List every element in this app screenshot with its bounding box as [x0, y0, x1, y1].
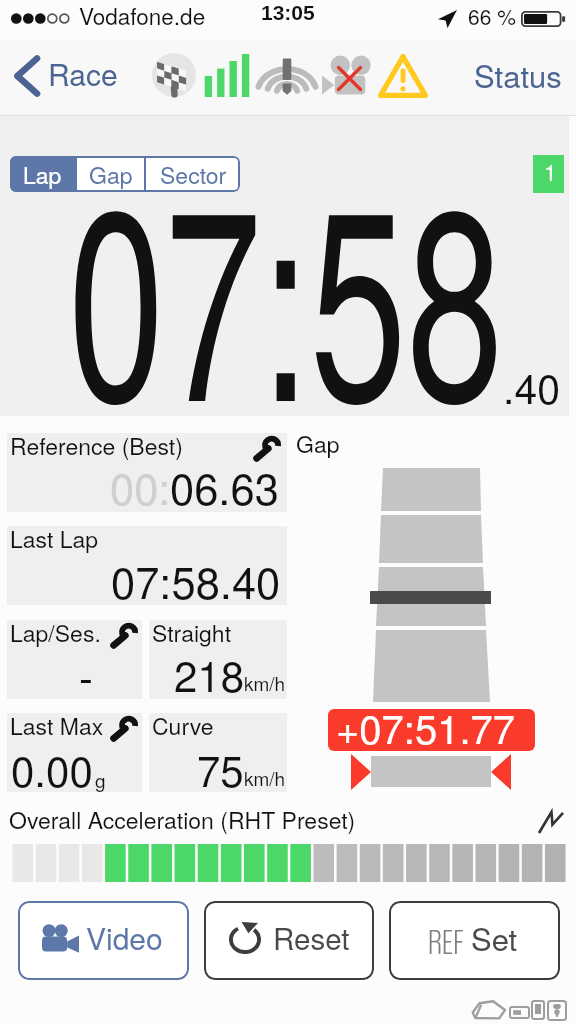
- staticText: Race: [48, 52, 118, 95]
- other: Signal strength: [204, 54, 251, 98]
- staticText: Gap: [296, 427, 340, 460]
- other: Lock: [548, 1001, 566, 1020]
- staticText: 00:: [110, 455, 171, 517]
- staticText: km/h: [244, 669, 286, 696]
- button[interactable]: [149, 620, 287, 699]
- staticText: 06.63: [170, 455, 279, 517]
- staticText: 07:58: [68, 94, 504, 477]
- staticText: Vodafone.de: [79, 0, 206, 31]
- staticText: Sector: [160, 158, 227, 191]
- button[interactable]: [7, 433, 287, 512]
- staticText: 07:58.40: [111, 549, 281, 611]
- staticText: 218: [174, 644, 245, 704]
- other: Video disabled: [322, 55, 367, 96]
- button[interactable]: [7, 713, 142, 792]
- staticText: Curve: [152, 709, 214, 742]
- staticText: Status: [474, 52, 562, 96]
- staticText: Last Max: [10, 709, 104, 742]
- staticText: 66 %: [468, 1, 516, 31]
- staticText: Last Lap: [10, 522, 99, 555]
- staticText: 1: [544, 155, 557, 188]
- button[interactable]: [533, 155, 564, 193]
- other: WiFi: [257, 55, 317, 96]
- staticText: +07:51.77: [336, 698, 516, 755]
- staticText: Straight: [152, 616, 232, 649]
- button[interactable]: [12, 52, 122, 98]
- other: Battery: [510, 1007, 529, 1018]
- staticText: 0.00: [11, 739, 93, 799]
- other: Helmet: [472, 1000, 506, 1020]
- staticText: Gap: [89, 158, 133, 191]
- staticText: 13:05: [261, 1, 315, 24]
- button[interactable]: [7, 526, 287, 605]
- button[interactable]: [18, 901, 189, 980]
- button[interactable]: [7, 620, 142, 699]
- other: Phone: [532, 1001, 544, 1019]
- staticText: Reference (Best): [10, 429, 183, 462]
- button[interactable]: [389, 901, 560, 980]
- button[interactable]: Chart: [539, 812, 563, 833]
- staticText: Lap: [23, 158, 62, 191]
- staticText: -: [79, 645, 93, 705]
- staticText: 75: [197, 739, 244, 799]
- button[interactable]: Sector: [146, 156, 240, 192]
- staticText: km/h: [244, 764, 286, 791]
- staticText: Overall Acceleration (RHT Preset): [9, 803, 356, 836]
- staticText: Set: [471, 915, 518, 959]
- staticText: .40: [503, 357, 560, 416]
- button[interactable]: Lap: [10, 156, 75, 192]
- other: Warning: [378, 54, 428, 98]
- staticText: Lap/Ses.: [10, 616, 101, 649]
- button[interactable]: [149, 713, 287, 792]
- staticText: g: [95, 766, 106, 793]
- staticText: REF: [428, 921, 464, 965]
- staticText: Reset: [273, 916, 350, 958]
- button[interactable]: Gap: [77, 156, 144, 192]
- staticText: Video: [86, 916, 163, 959]
- button[interactable]: [468, 56, 568, 96]
- other: Track map: [152, 53, 196, 97]
- button[interactable]: [204, 901, 374, 980]
- button[interactable]: [328, 709, 535, 751]
